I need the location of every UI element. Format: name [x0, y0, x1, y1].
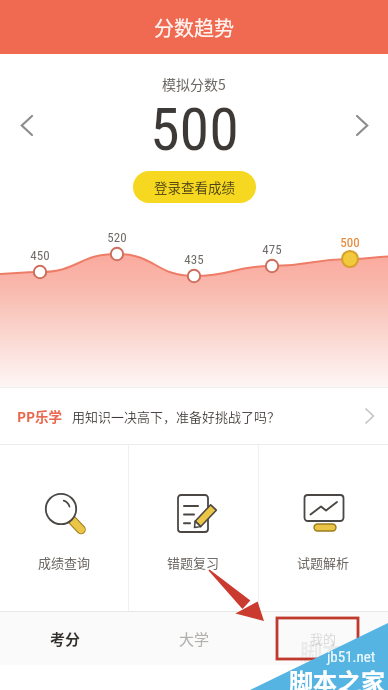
button[interactable]: 成绩查询 [0, 445, 128, 611]
staticText: 大学 [179, 628, 210, 650]
button[interactable]: 错题复习 [129, 445, 258, 611]
staticText: 试题解析 [297, 553, 350, 572]
staticText: jb51.net [327, 648, 376, 666]
button[interactable]: 考分 [0, 612, 130, 665]
button[interactable]: 登录查看成绩 [133, 171, 256, 203]
staticText: 520 [107, 230, 127, 245]
button[interactable]: 试题解析 [259, 445, 388, 611]
button[interactable]: Next score [342, 105, 382, 145]
staticText: 我的 [310, 629, 337, 648]
staticText: PP乐学 [17, 406, 63, 426]
button[interactable]: 大学 [130, 612, 259, 665]
staticText: 成绩查询 [38, 553, 91, 572]
staticText: 分数趋势 [154, 13, 234, 42]
button[interactable]: Previous score [6, 105, 46, 145]
staticText: 475 [262, 242, 282, 257]
staticText: 450 [30, 248, 50, 263]
staticText: 用知识一决高下，准备好挑战了吗？ [72, 407, 281, 426]
staticText: 500 [150, 94, 239, 164]
staticText: 500 [340, 235, 360, 250]
staticText: 脚本之家 [289, 663, 385, 690]
button[interactable]: PP乐学 [0, 388, 388, 444]
staticText: 考分 [50, 628, 81, 650]
staticText: 模拟分数5 [162, 74, 226, 94]
staticText: 错题复习 [167, 553, 220, 572]
staticText: 脚本之家 [300, 634, 388, 666]
staticText: 435 [184, 252, 204, 267]
button[interactable]: 我的 [259, 612, 388, 665]
staticText: 登录查看成绩 [154, 177, 235, 197]
